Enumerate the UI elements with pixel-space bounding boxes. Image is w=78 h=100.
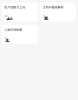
staticText: 人脸识别检测	[4, 28, 22, 31]
button[interactable]: 照片或图片上传	[2, 2, 37, 21]
button[interactable]: 文档与图表解析	[41, 2, 76, 21]
staticText: 照片或图片上传	[4, 5, 25, 9]
staticText: 文档与图表解析	[43, 5, 64, 9]
button[interactable]: 人脸识别检测	[2, 25, 37, 44]
